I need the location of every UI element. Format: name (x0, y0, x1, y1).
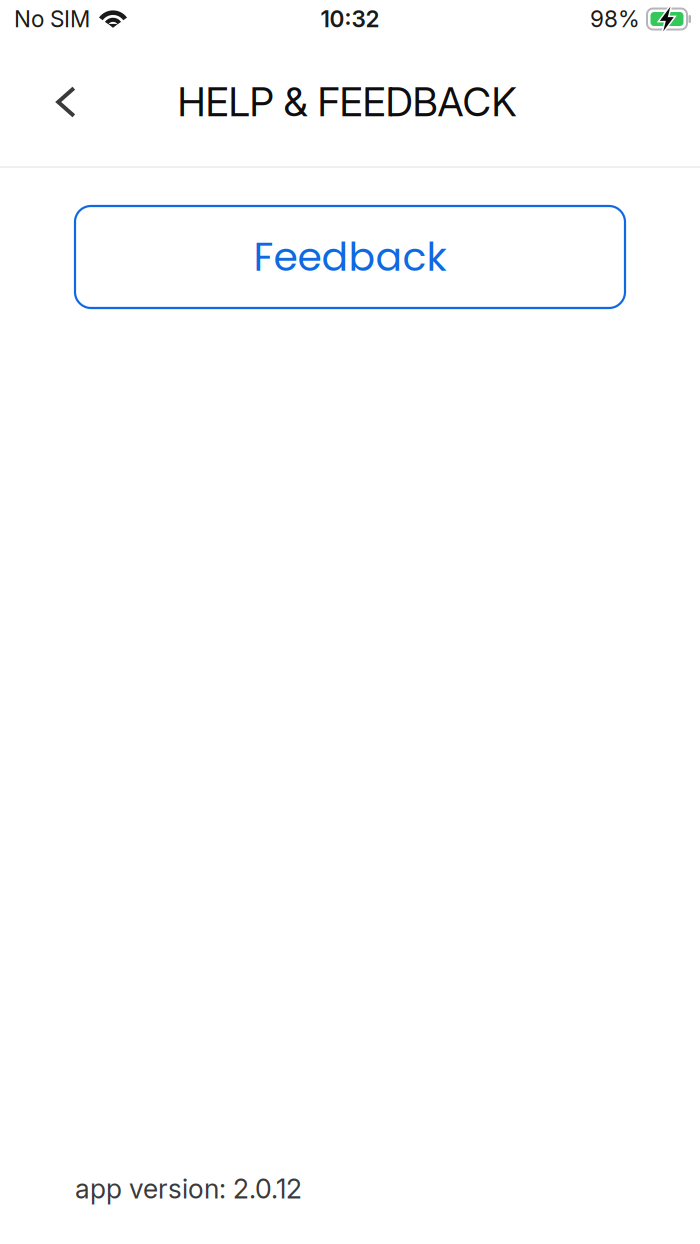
staticText: No SIM (14, 5, 90, 33)
button[interactable]: Back (37, 66, 95, 138)
staticText: 98% (590, 5, 640, 33)
staticText: 10:32 (320, 5, 379, 33)
button[interactable]: Feedback (75, 206, 625, 308)
staticText: app version: 2.0.12 (75, 1173, 302, 1205)
staticText: Feedback (253, 229, 446, 285)
staticText: HELP & FEEDBACK (177, 78, 516, 126)
